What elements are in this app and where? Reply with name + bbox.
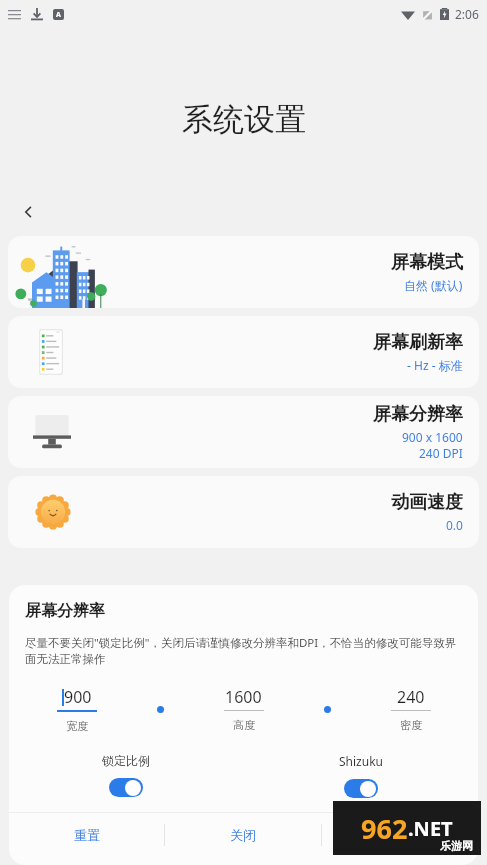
button[interactable]: 重置: [9, 813, 164, 857]
staticText: 宽度: [66, 719, 88, 733]
staticText: 尽量不要关闭"锁定比例"，关闭后请谨慎修改分辨率和DPI，不恰当的修改可能导致界…: [25, 635, 462, 666]
staticText: 高度: [233, 718, 255, 732]
staticText: 屏幕分辨率: [25, 601, 105, 621]
staticText: - Hz - 标准: [407, 357, 463, 373]
staticText: 系统设置: [182, 100, 306, 139]
button[interactable]: 屏幕模式: [8, 236, 479, 308]
staticText: .NET: [408, 815, 453, 842]
staticText: 900 x 1600: [402, 429, 463, 445]
staticText: 屏幕模式: [391, 251, 463, 274]
staticText: 乐游网: [440, 839, 473, 853]
button[interactable]: 1600: [186, 686, 301, 732]
button[interactable]: 900: [19, 686, 134, 733]
staticText: 屏幕分辨率: [373, 403, 463, 426]
staticText: 密度: [400, 718, 422, 732]
staticText: 240: [397, 686, 425, 708]
button[interactable]: 关闭: [165, 813, 321, 857]
button[interactable]: 动画速度: [8, 476, 479, 548]
staticText: A: [56, 10, 61, 20]
staticText: 屏幕刷新率: [373, 331, 463, 354]
staticText: 自然 (默认): [404, 277, 463, 293]
staticText: 动画速度: [391, 491, 463, 514]
button[interactable]: 屏幕分辨率: [8, 396, 479, 468]
staticText: Shizuku: [339, 753, 383, 769]
button[interactable]: 锁定比例: [9, 753, 243, 797]
staticText: 锁定比例: [102, 753, 150, 768]
staticText: 确定: [387, 827, 413, 843]
staticText: 962: [361, 810, 408, 847]
button[interactable]: 屏幕刷新率: [8, 316, 479, 388]
staticText: 2:06: [455, 6, 479, 22]
button[interactable]: 240: [353, 686, 468, 732]
staticText: 1600: [225, 686, 262, 708]
staticText: 关闭: [230, 827, 256, 843]
staticText: 重置: [74, 827, 100, 843]
button[interactable]: Back: [14, 197, 44, 227]
button[interactable]: Shizuku: [243, 753, 478, 798]
button[interactable]: 确定: [322, 813, 478, 857]
staticText: 900: [64, 686, 92, 708]
staticText: 240 DPI: [419, 445, 463, 461]
staticText: 0.0: [446, 517, 463, 533]
